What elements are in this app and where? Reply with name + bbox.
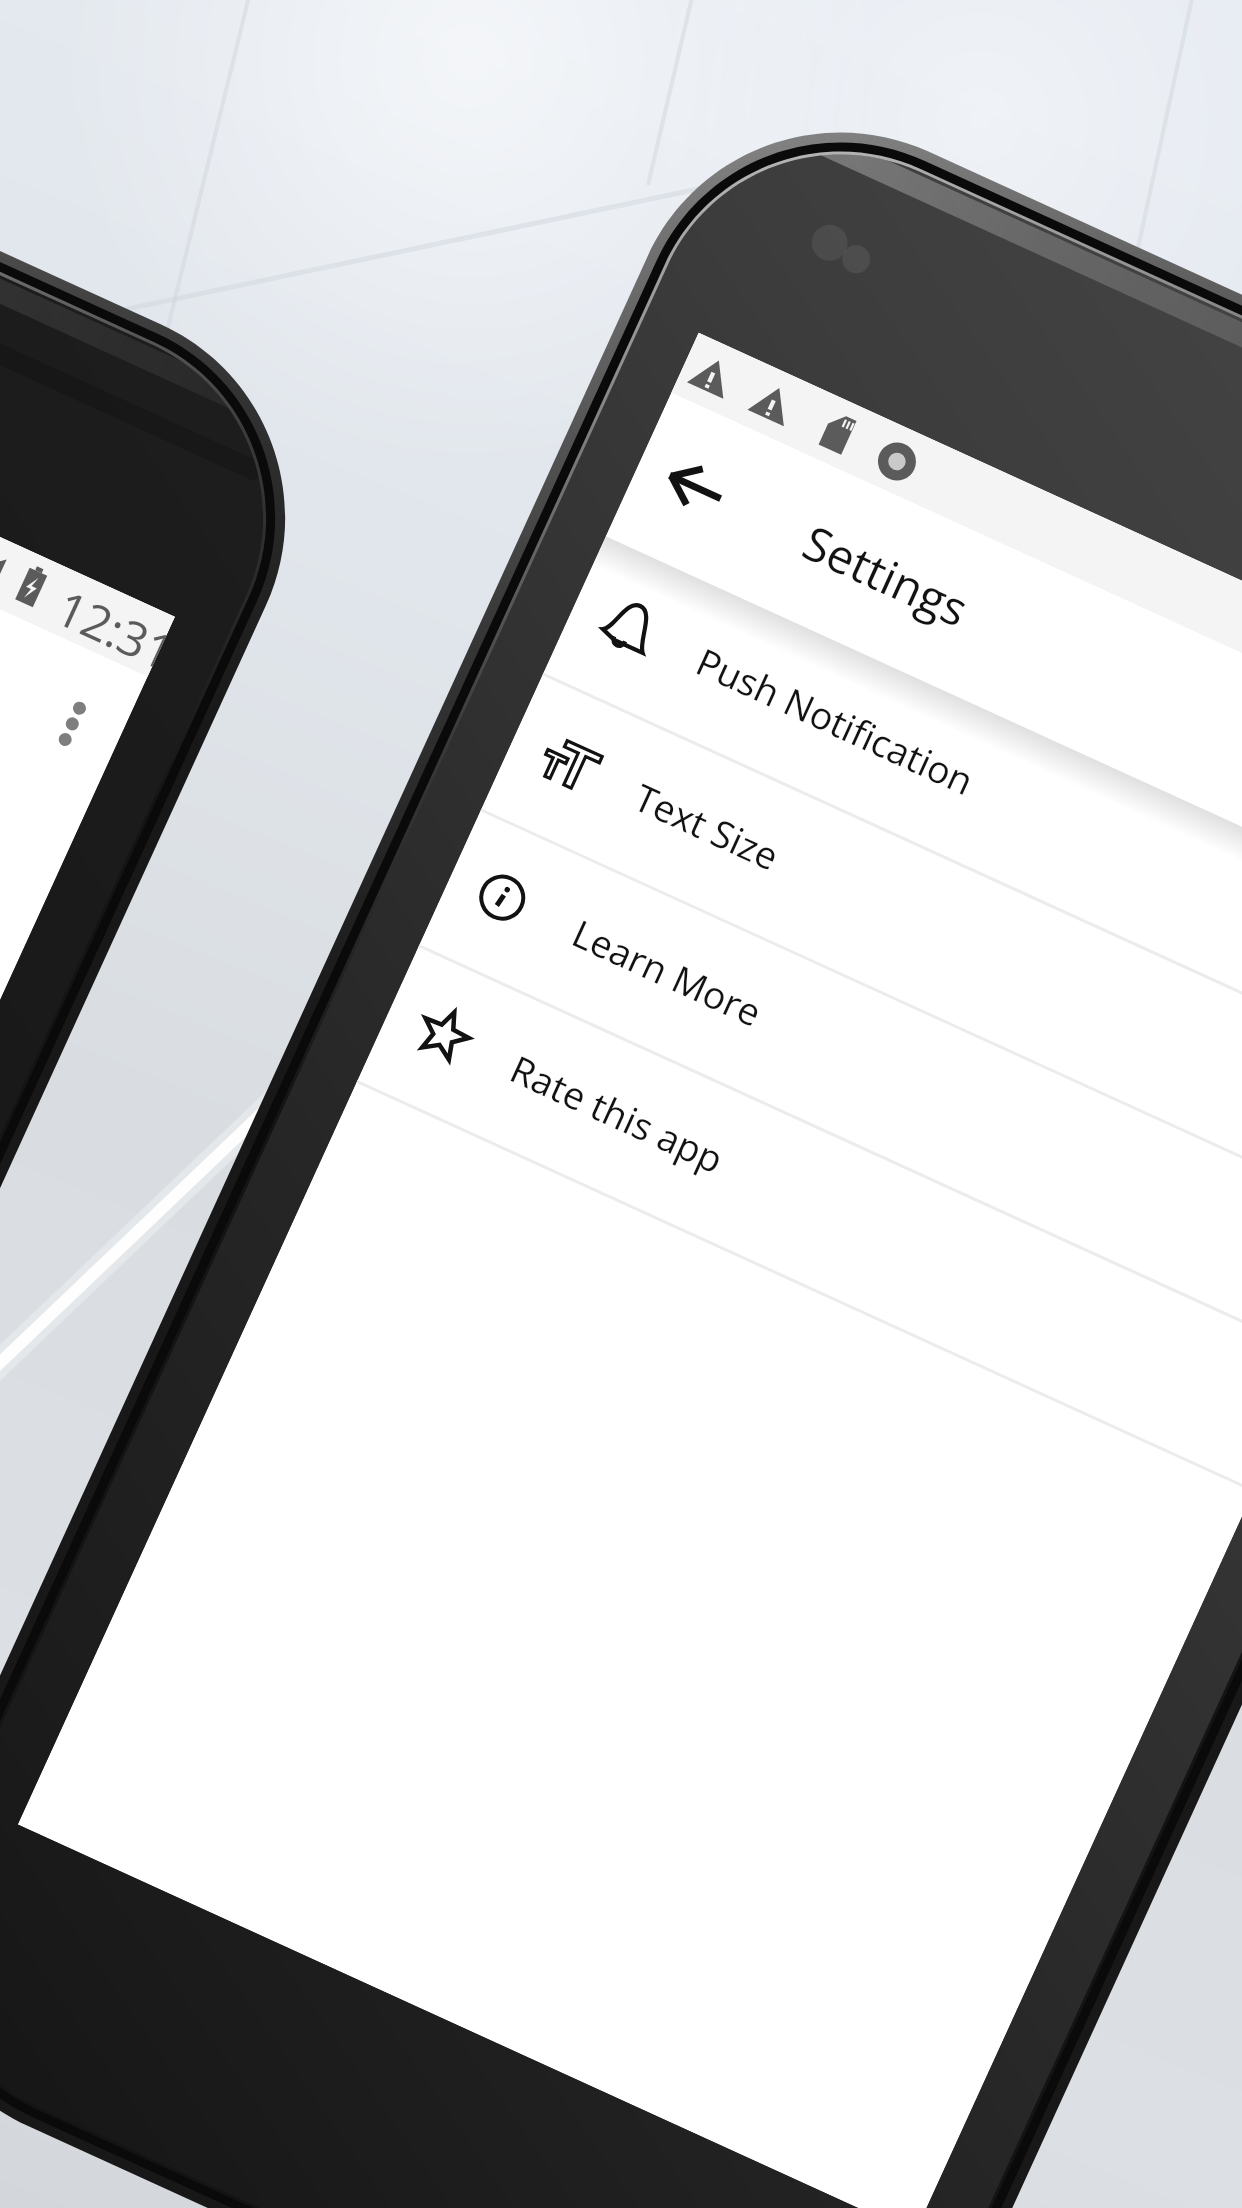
button[interactable] <box>0 0 1242 2208</box>
